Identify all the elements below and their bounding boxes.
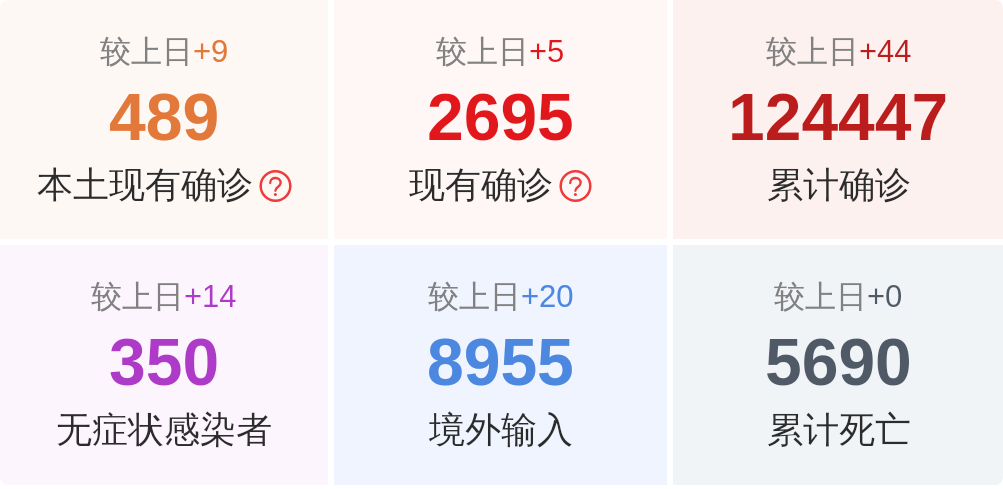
button[interactable]: 较上日+9 — [0, 0, 328, 239]
button[interactable]: Help — [259, 168, 292, 201]
button[interactable]: 较上日+44 — [673, 0, 1003, 239]
staticText: 较上日+5 — [436, 32, 565, 71]
staticText: 较上日+0 — [774, 277, 903, 316]
staticText: 5690 — [765, 325, 912, 399]
button[interactable]: 较上日+14 — [0, 245, 328, 485]
button[interactable]: 较上日+0 — [673, 245, 1003, 485]
staticText: 较上日+14 — [91, 277, 237, 316]
staticText: 累计确诊 — [767, 162, 911, 207]
staticText: 本土现有确诊 — [37, 162, 253, 207]
staticText: 境外输入 — [429, 407, 573, 452]
staticText: 较上日+9 — [100, 32, 229, 71]
staticText: 124447 — [728, 80, 949, 154]
staticText: 较上日+20 — [428, 277, 574, 316]
staticText: 489 — [109, 80, 220, 154]
staticText: 8955 — [427, 325, 574, 399]
staticText: 2695 — [427, 80, 574, 154]
staticText: 无症状感染者 — [56, 407, 272, 452]
button[interactable]: Help — [559, 168, 592, 201]
staticText: 350 — [109, 325, 220, 399]
staticText: 较上日+44 — [766, 32, 912, 71]
staticText: 累计死亡 — [767, 407, 911, 452]
button[interactable]: 较上日+5 — [334, 0, 667, 239]
button[interactable]: 较上日+20 — [334, 245, 667, 485]
staticText: 现有确诊 — [409, 162, 553, 207]
